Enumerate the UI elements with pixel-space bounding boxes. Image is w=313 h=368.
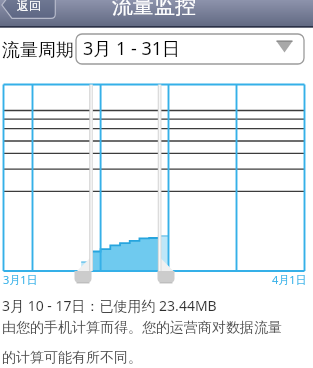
staticText: 流量周期: [2, 39, 74, 62]
staticText: 返回: [17, 0, 41, 13]
staticText: 3月 1 - 31日: [83, 36, 181, 61]
staticText: 3月 10 - 17日：已使用约 23.44MB: [2, 296, 217, 315]
button[interactable]: 返回: [1, 0, 56, 19]
button[interactable]: 3月 1 - 31日: [76, 34, 304, 64]
staticText: 3月1日: [3, 272, 38, 287]
staticText: 由您的手机计算而得。您的运营商对数据流量 的计算可能有所不同。: [2, 319, 282, 367]
staticText: 流量监控: [112, 0, 196, 19]
staticText: 4月1日: [272, 272, 307, 287]
